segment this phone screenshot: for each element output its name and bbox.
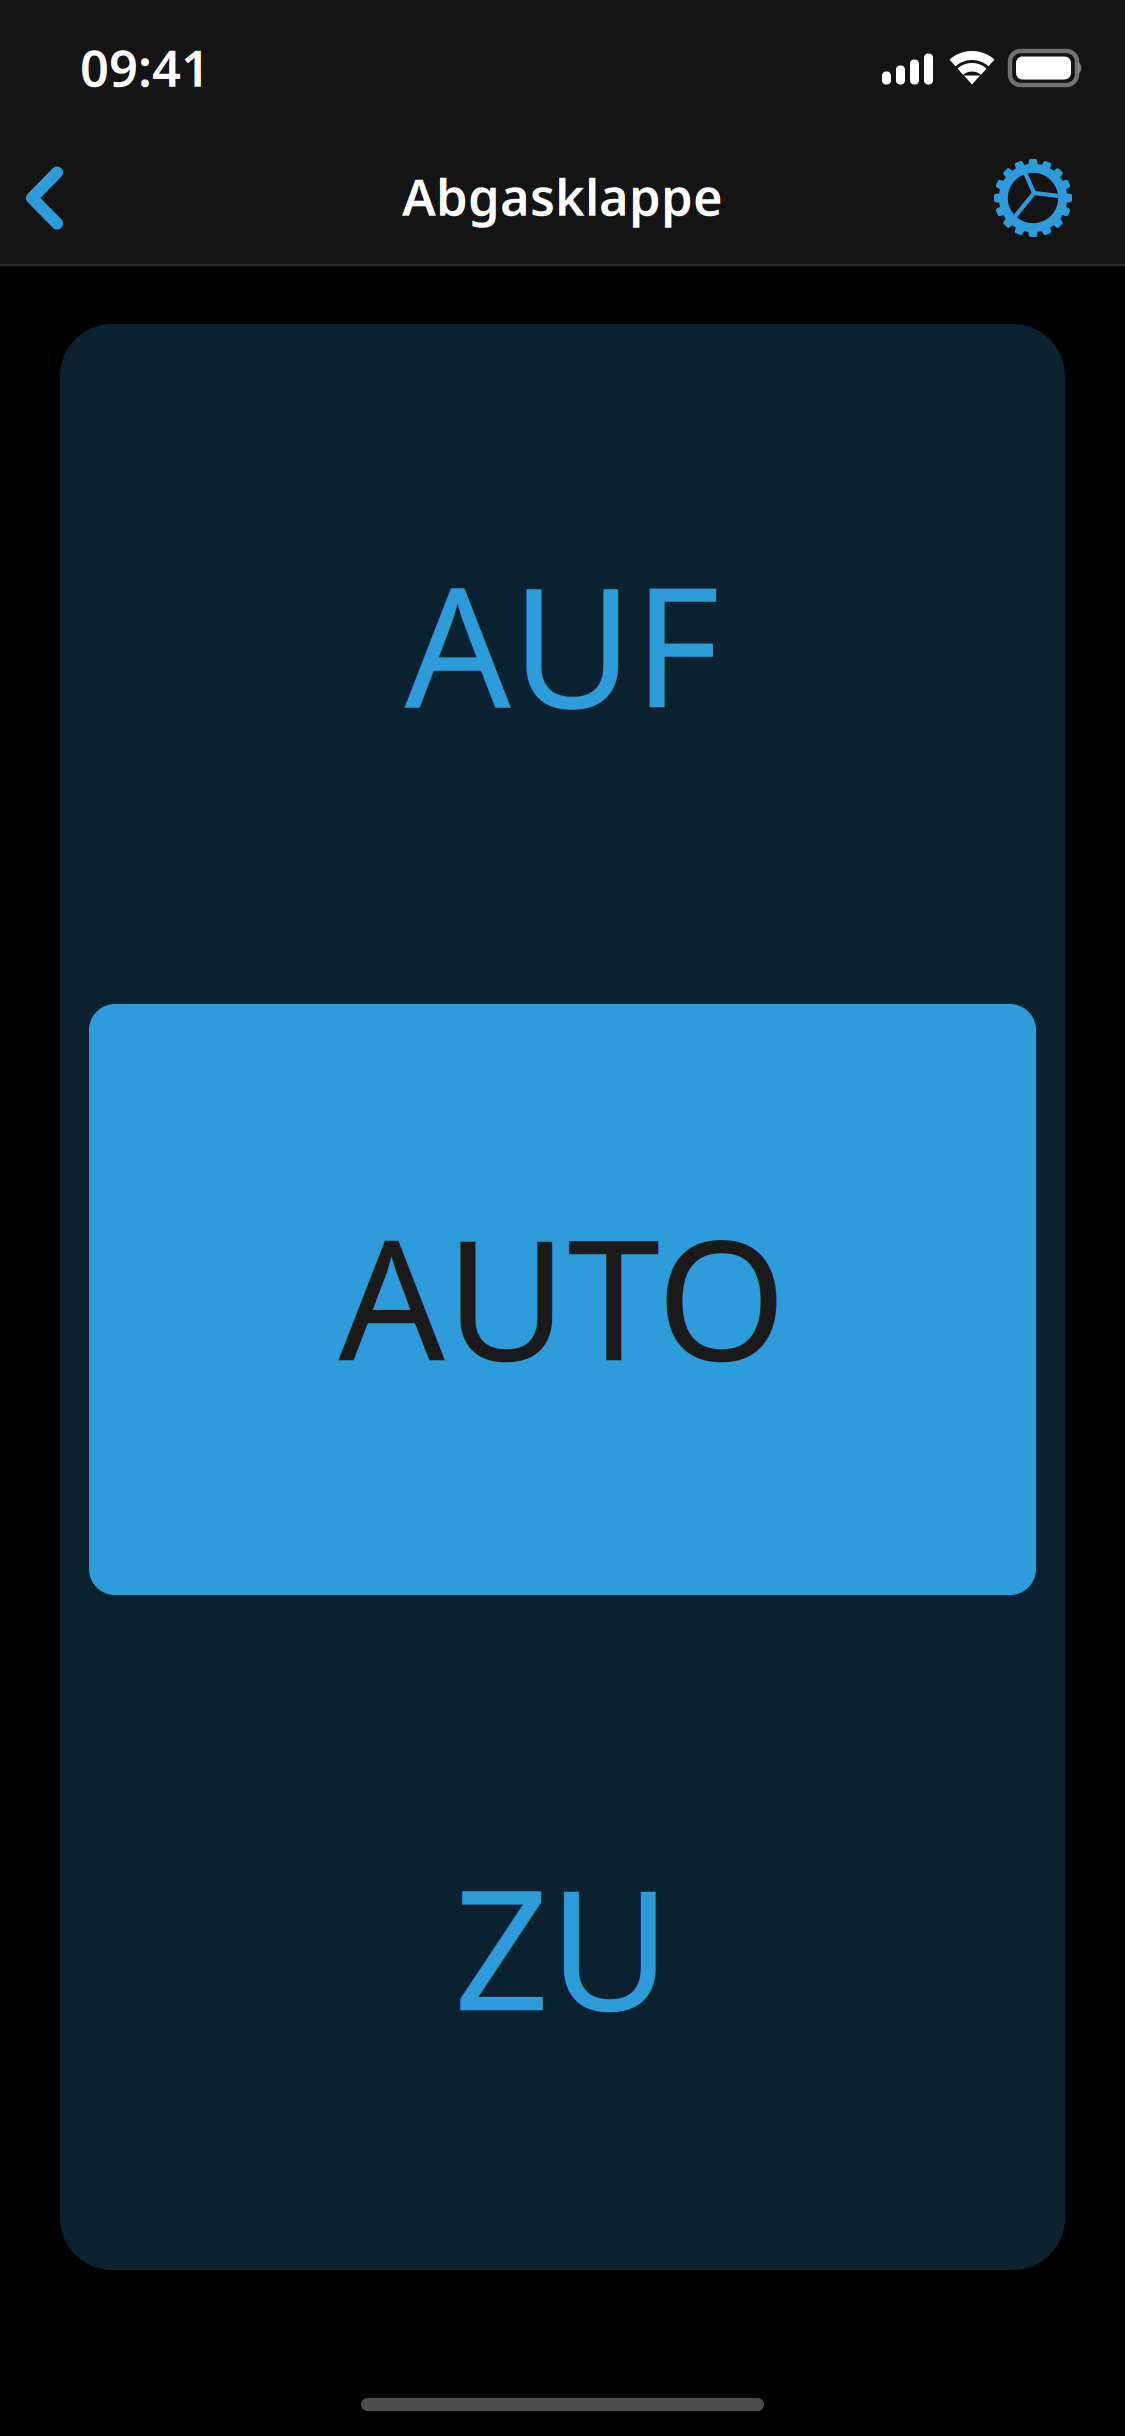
- staticText: Abgasklappe: [402, 162, 723, 230]
- staticText: 09:41: [80, 33, 210, 101]
- button[interactable]: AUTO: [60, 1004, 1065, 1595]
- staticText: AUTO: [338, 1185, 786, 1406]
- button[interactable]: Back: [0, 132, 94, 264]
- button[interactable]: AUF: [60, 324, 1065, 1004]
- staticText: ZU: [454, 1835, 671, 2056]
- staticText: AUF: [404, 532, 720, 754]
- button[interactable]: ZU: [60, 1595, 1065, 2270]
- button[interactable]: Settings: [985, 132, 1125, 264]
